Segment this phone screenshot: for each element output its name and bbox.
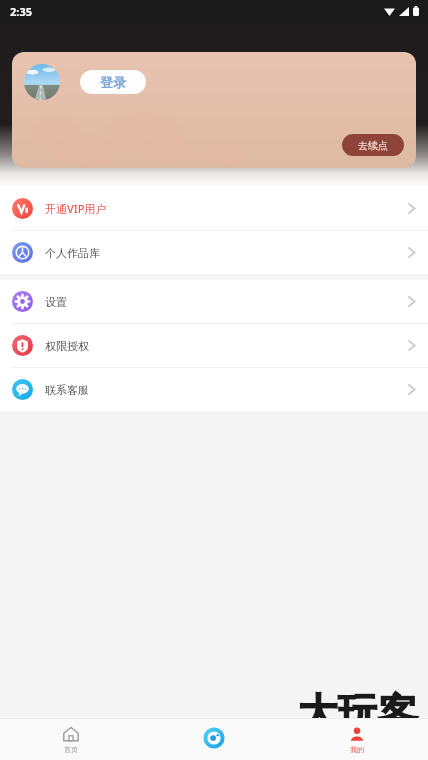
button[interactable]: 设置 — [0, 280, 428, 323]
button[interactable]: 联系客服 — [0, 368, 428, 411]
button[interactable]: 开通VIP用户 — [0, 187, 428, 230]
staticText: 我的 — [350, 745, 364, 754]
staticText: 首页 — [64, 745, 78, 754]
staticText: 去续点 — [358, 139, 388, 152]
button[interactable]: 登录 — [80, 70, 146, 94]
button[interactable]: 我的 — [285, 719, 428, 760]
staticText: 个人作品库 — [45, 246, 100, 260]
staticText: 登录 — [100, 74, 126, 90]
button[interactable]: 去续点 — [342, 134, 404, 156]
button[interactable]: 登录 — [12, 52, 416, 168]
staticText: 开通VIP用户 — [45, 201, 107, 216]
staticText: 联系客服 — [45, 383, 89, 397]
staticText: 设置 — [45, 295, 67, 309]
staticText: 2:35 — [10, 4, 32, 19]
button[interactable]: 个人作品库 — [0, 231, 428, 274]
button[interactable]: 首页 — [0, 719, 142, 760]
button[interactable]: Create — [142, 719, 285, 760]
staticText: 权限授权 — [45, 339, 89, 353]
button[interactable]: 权限授权 — [0, 324, 428, 367]
staticText: 大玩客 — [298, 688, 418, 738]
